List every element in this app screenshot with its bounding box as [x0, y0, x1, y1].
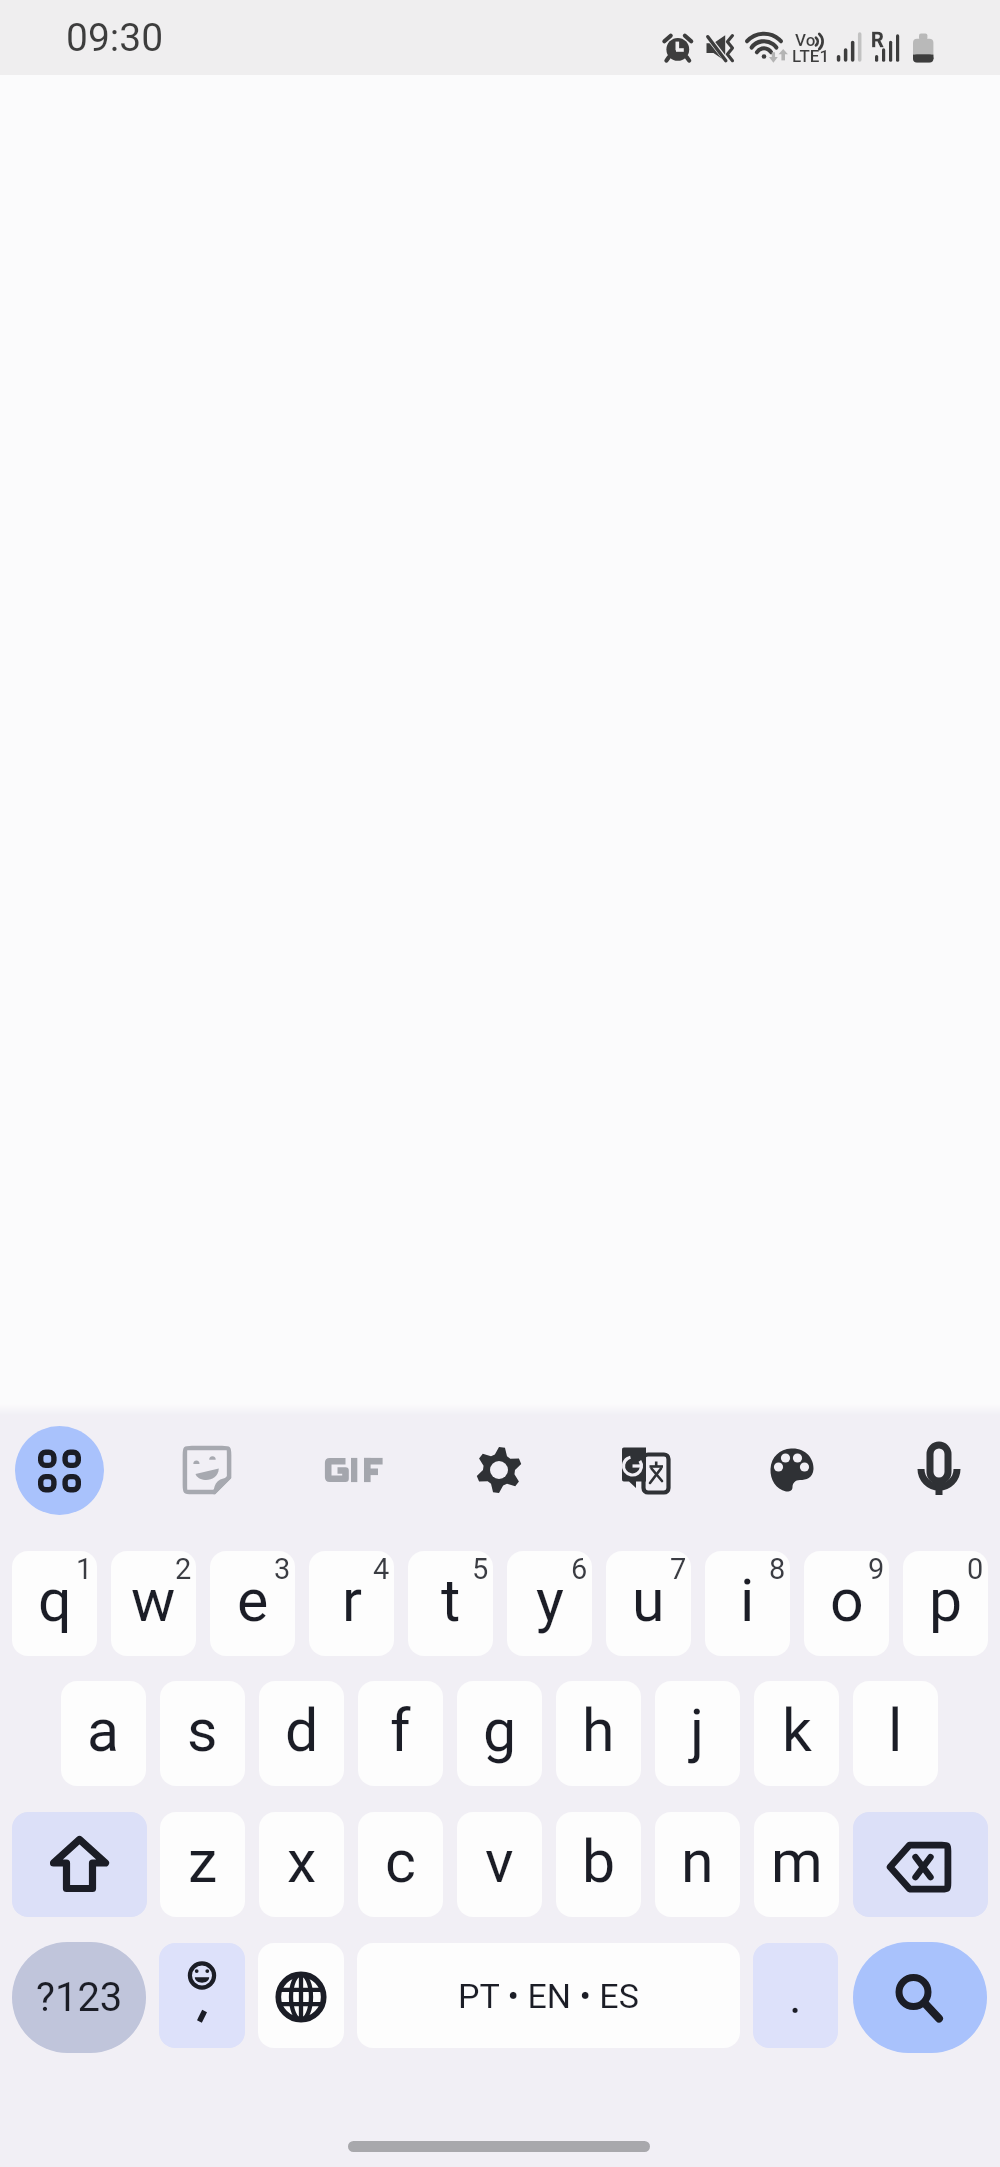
button[interactable]: n [655, 1812, 740, 1917]
button[interactable]: h [556, 1681, 641, 1786]
staticText: q [38, 1566, 72, 1635]
staticText: LTE1 [792, 46, 830, 66]
staticText: y [536, 1566, 564, 1635]
button[interactable]: Change language [258, 1943, 344, 2048]
button[interactable]: q [12, 1551, 97, 1656]
button[interactable]: Translate [601, 1426, 689, 1514]
staticText: x [287, 1827, 317, 1896]
button[interactable]: GIF [309, 1426, 397, 1514]
staticText: b [582, 1827, 616, 1896]
button[interactable]: Symbols [12, 1942, 146, 2053]
staticText: 7 [670, 1552, 687, 1586]
button[interactable]: k [754, 1681, 839, 1786]
button[interactable]: d [259, 1681, 344, 1786]
button[interactable]: Keyboard modes [15, 1426, 104, 1515]
staticText: m [771, 1827, 823, 1896]
staticText: PT • EN • ES [458, 1976, 639, 2016]
button[interactable]: l [853, 1681, 938, 1786]
staticText: s [187, 1696, 218, 1765]
staticText: f [390, 1696, 411, 1765]
button[interactable]: u [606, 1551, 691, 1656]
button[interactable]: t [408, 1551, 493, 1656]
button[interactable]: e [210, 1551, 295, 1656]
staticText: z [188, 1827, 218, 1896]
staticText: ?123 [36, 1974, 123, 2021]
button[interactable]: z [160, 1812, 245, 1917]
staticText: 09:30 [66, 15, 164, 61]
button[interactable]: x [259, 1812, 344, 1917]
staticText: g [483, 1696, 517, 1765]
button[interactable]: v [457, 1812, 542, 1917]
button[interactable]: Stickers [163, 1426, 251, 1514]
button[interactable]: j [655, 1681, 740, 1786]
staticText: n [681, 1827, 714, 1896]
button[interactable]: p [903, 1551, 988, 1656]
staticText: 2 [175, 1552, 192, 1586]
staticText: l [888, 1696, 903, 1765]
staticText: e [237, 1566, 269, 1635]
staticText: d [285, 1696, 319, 1765]
staticText: h [582, 1696, 615, 1765]
staticText: 8 [769, 1552, 786, 1586]
staticText: 1 [76, 1552, 93, 1586]
staticText: a [87, 1696, 120, 1765]
button[interactable]: b [556, 1812, 641, 1917]
button[interactable]: o [804, 1551, 889, 1656]
staticText: v [485, 1827, 514, 1896]
staticText: w [131, 1566, 176, 1635]
staticText: c [385, 1827, 416, 1896]
staticText: 3 [274, 1552, 291, 1586]
button[interactable]: Voice input [895, 1426, 983, 1514]
staticText: t [441, 1566, 461, 1635]
staticText: r [342, 1566, 362, 1635]
staticText: p [929, 1566, 963, 1635]
staticText: 0 [967, 1552, 984, 1586]
button[interactable]: m [754, 1812, 839, 1917]
staticText: i [740, 1566, 755, 1635]
staticText: 5 [472, 1552, 489, 1586]
staticText: k [782, 1696, 812, 1765]
button[interactable]: i [705, 1551, 790, 1656]
button[interactable]: Search [853, 1942, 987, 2053]
staticText: 9 [868, 1552, 885, 1586]
button[interactable]: r [309, 1551, 394, 1656]
button[interactable]: w [111, 1551, 196, 1656]
button[interactable]: Backspace [853, 1812, 988, 1917]
staticText: R [871, 28, 884, 51]
button[interactable]: Space [357, 1943, 740, 2048]
button[interactable]: a [61, 1681, 146, 1786]
button[interactable]: Settings [455, 1426, 543, 1514]
button[interactable]: Shift [12, 1812, 147, 1917]
button[interactable]: Emoji [159, 1943, 245, 2048]
button[interactable]: c [358, 1812, 443, 1917]
button[interactable]: g [457, 1681, 542, 1786]
staticText: u [632, 1566, 665, 1635]
button[interactable]: s [160, 1681, 245, 1786]
staticText: 6 [571, 1552, 588, 1586]
staticText: Vo [795, 30, 816, 50]
button[interactable]: f [358, 1681, 443, 1786]
button[interactable]: Period [753, 1943, 838, 2048]
staticText: o [830, 1566, 864, 1635]
staticText: j [690, 1696, 705, 1765]
staticText: . [789, 1968, 802, 2024]
button[interactable]: y [507, 1551, 592, 1656]
staticText: 4 [373, 1552, 390, 1586]
button[interactable]: Themes [748, 1426, 836, 1514]
